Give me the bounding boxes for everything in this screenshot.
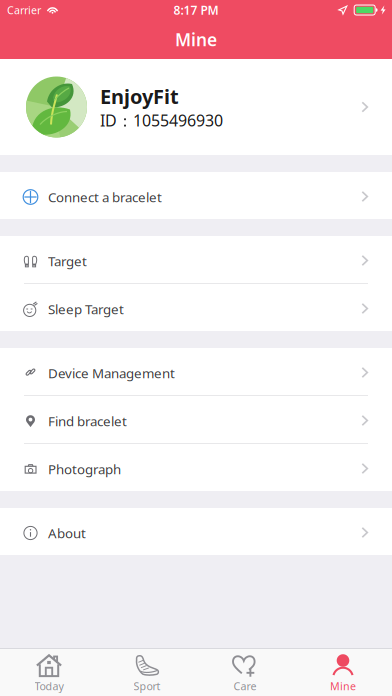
button[interactable]: Today [0,649,98,696]
staticText: About [48,524,86,542]
staticText: Today [34,679,63,693]
staticText: Find bracelet [48,412,127,430]
button[interactable]: Sport [98,649,196,696]
staticText: Mine [175,28,217,51]
button[interactable]: Connect a bracelet [0,172,392,219]
staticText: EnjoyFit [100,83,179,110]
staticText: Target [48,252,87,270]
button[interactable]: Photograph [0,444,392,491]
button[interactable]: Find bracelet [0,396,392,443]
staticText: Sport [133,679,160,693]
staticText: ID：1055496930 [100,110,223,131]
button[interactable]: Target [0,236,392,283]
button[interactable]: Sleep Target [0,284,392,331]
staticText: Sleep Target [48,300,124,318]
staticText: Photograph [48,460,121,478]
staticText: Care [233,679,256,693]
staticText: Carrier [7,3,41,17]
button[interactable]: About [0,508,392,555]
staticText: 8:17 PM [173,2,218,18]
staticText: Mine [330,679,356,693]
button[interactable]: Care [196,649,294,696]
button[interactable]: Mine [294,649,392,696]
staticText: Connect a bracelet [48,188,162,206]
button[interactable]: EnjoyFit [0,59,392,155]
button[interactable]: Device Management [0,348,392,395]
staticText: Device Management [48,364,175,382]
